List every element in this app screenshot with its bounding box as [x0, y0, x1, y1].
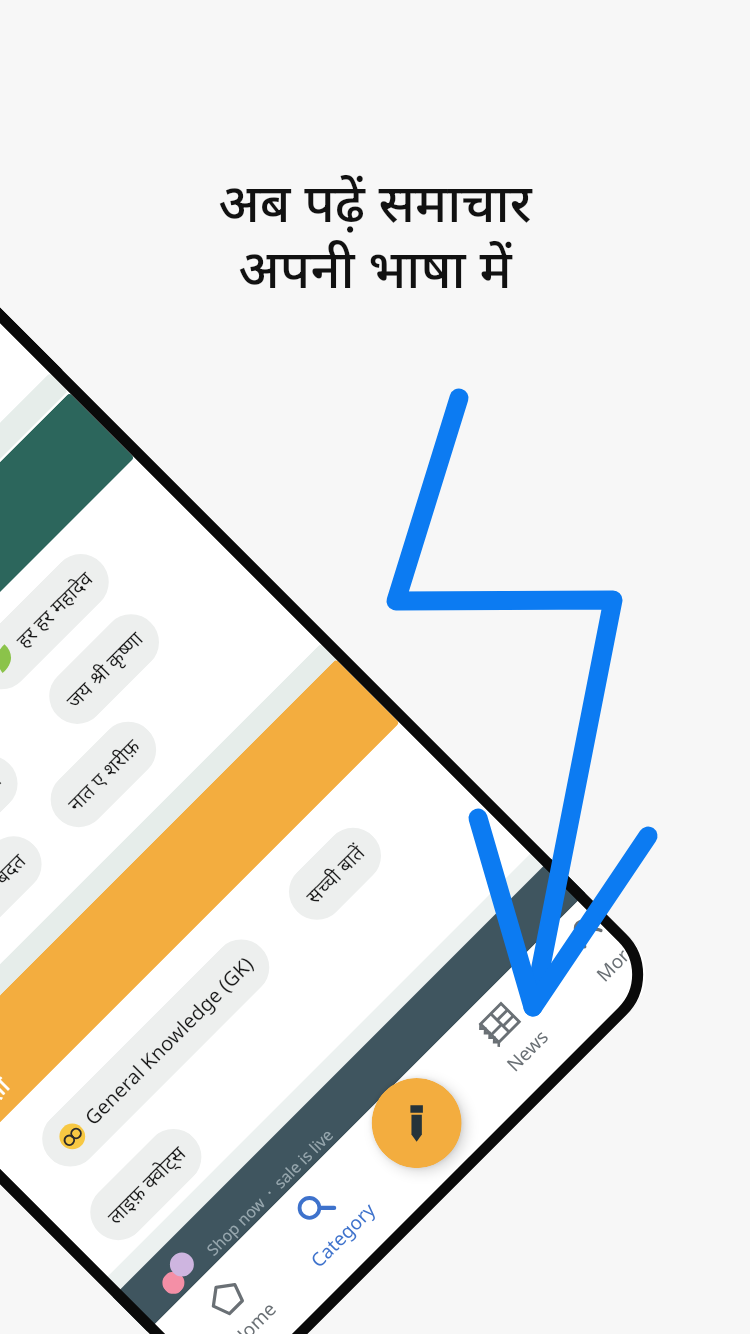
staticText: News	[501, 1024, 554, 1077]
staticText: सच्ची बातें	[300, 839, 371, 909]
staticText: दुआ बदत	[0, 847, 31, 916]
button[interactable]	[0, 644, 337, 1082]
button[interactable]: More	[533, 902, 644, 1013]
staticText: More	[591, 936, 642, 987]
button[interactable]: News	[443, 967, 579, 1103]
staticText: शिक्षा	[0, 1069, 16, 1126]
button[interactable]: Create post	[353, 1059, 480, 1187]
staticText: Category	[305, 1197, 381, 1273]
staticText: General Knowledge (GK)	[79, 950, 259, 1131]
staticText: अब पढ़ें समाचार	[218, 166, 532, 238]
button[interactable]: जय श्री कृष्णा	[38, 603, 170, 735]
button[interactable]: शनिदेव	[0, 744, 29, 844]
staticText: अपनी भाषा में	[238, 232, 512, 304]
button[interactable]: लाइफ़ क्वोट्स	[79, 1117, 213, 1252]
staticText: नात ए शरीफ़	[62, 733, 146, 817]
button[interactable]	[0, 393, 134, 879]
staticText: जय श्री कृष्णा	[60, 625, 149, 714]
staticText: Home	[225, 1296, 282, 1334]
button[interactable]: नात ए शरीफ़	[39, 710, 168, 839]
button[interactable]: शिक्षा	[0, 659, 400, 1144]
button[interactable]: General Knowledge (GK)	[31, 928, 281, 1178]
staticText: Shop now · sale is live	[202, 1124, 338, 1260]
button[interactable]: दुआ बदत	[0, 825, 53, 938]
button[interactable]	[0, 373, 68, 813]
button[interactable]: हर हर महादेव	[0, 542, 120, 701]
button[interactable]: Category	[259, 1152, 394, 1287]
button[interactable]: सच्ची बातें	[277, 816, 393, 931]
staticText: हर हर महादेव	[10, 565, 98, 653]
button[interactable]: Home	[170, 1241, 305, 1334]
staticText: लाइफ़ क्वोट्स	[101, 1140, 191, 1230]
staticText: शनिदेव	[0, 767, 7, 823]
